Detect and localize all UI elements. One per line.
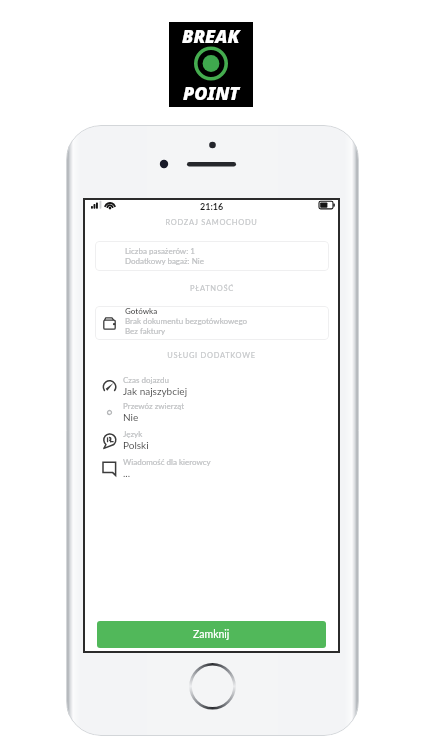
button[interactable]: Message to driver <box>83 456 340 480</box>
staticText: RODZAJ SAMOCHODU <box>165 218 258 227</box>
staticText: Nie <box>123 411 139 423</box>
staticText: Bez faktury <box>125 326 166 336</box>
staticText: POINT <box>183 81 240 106</box>
other: Arrival time <box>102 379 117 394</box>
other: Language <box>102 433 117 448</box>
staticText: USŁUGI DODATKOWE <box>167 351 256 360</box>
other: Pet transport <box>102 405 117 420</box>
staticText: Brak dokumentu bezgotówkowego <box>125 316 248 326</box>
staticText: PŁATNOŚĆ <box>190 284 234 293</box>
staticText: Przewóz zwierząt <box>123 401 185 411</box>
staticText: Czas dojazdu <box>123 375 169 385</box>
staticText: Liczba pasażerów: 1 <box>125 246 195 256</box>
staticText: Polski <box>123 439 149 451</box>
button[interactable]: Language <box>83 428 340 452</box>
staticText: ... <box>123 467 131 479</box>
other: Message to driver <box>102 461 117 476</box>
staticText: Gotówka <box>125 306 158 316</box>
button[interactable]: Liczba pasażerów: 1 <box>95 241 329 271</box>
staticText: Zamknij <box>193 628 230 641</box>
staticText: Jak najszybciej <box>123 385 188 397</box>
button[interactable]: Payment method <box>95 306 329 340</box>
staticText: 21:16 <box>200 201 224 212</box>
staticText: Dodatkowy bagaż: Nie <box>125 256 204 266</box>
button[interactable]: Arrival time <box>83 374 340 398</box>
button[interactable]: Pet transport <box>83 400 340 424</box>
staticText: BREAK <box>182 24 240 49</box>
other: Payment method <box>103 317 116 330</box>
staticText: Język <box>123 429 143 439</box>
staticText: Wiadomość dla kierowcy <box>123 457 211 467</box>
button[interactable]: Zamknij <box>97 621 326 648</box>
